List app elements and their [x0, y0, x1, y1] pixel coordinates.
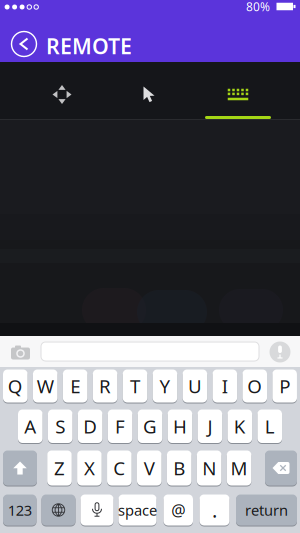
button[interactable]: space: [118, 494, 156, 526]
staticText: @: [171, 499, 185, 521]
button[interactable]: L: [257, 409, 282, 443]
button[interactable]: J: [198, 409, 222, 443]
button[interactable]: X: [77, 450, 102, 486]
button[interactable]: F: [108, 409, 132, 443]
staticText: return: [245, 500, 288, 520]
staticText: .: [212, 497, 217, 523]
button[interactable]: N: [197, 450, 221, 486]
button[interactable]: T: [123, 369, 147, 403]
staticText: I: [222, 374, 228, 398]
staticText: P: [279, 374, 290, 398]
staticText: F: [115, 414, 125, 439]
button[interactable]: H: [168, 409, 192, 443]
button[interactable]: R: [93, 369, 117, 403]
button[interactable]: S: [48, 409, 72, 443]
button[interactable]: [194, 71, 282, 117]
button[interactable]: [3, 450, 37, 486]
button[interactable]: V: [137, 450, 162, 486]
staticText: K: [234, 414, 246, 439]
button[interactable]: [106, 71, 194, 117]
button[interactable]: K: [227, 409, 252, 443]
button[interactable]: [265, 450, 297, 486]
staticText: R: [99, 374, 111, 398]
staticText: REMOTE: [46, 32, 132, 60]
button[interactable]: M: [227, 450, 251, 486]
staticText: L: [265, 414, 275, 439]
button[interactable]: W: [33, 369, 57, 403]
button[interactable]: [5, 339, 35, 365]
staticText: D: [83, 414, 97, 439]
staticText: H: [173, 414, 187, 439]
button[interactable]: D: [78, 409, 102, 443]
button[interactable]: Q: [3, 369, 28, 403]
button[interactable]: P: [272, 369, 297, 403]
button[interactable]: [268, 340, 291, 363]
staticText: A: [24, 414, 36, 439]
staticText: X: [84, 456, 95, 480]
staticText: 80%: [246, 0, 270, 14]
staticText: M: [231, 456, 248, 480]
staticText: O: [247, 374, 262, 398]
button[interactable]: 123: [3, 494, 36, 526]
staticText: space: [118, 500, 157, 520]
button[interactable]: G: [138, 409, 162, 443]
button[interactable]: Y: [153, 369, 177, 403]
staticText: Y: [159, 374, 170, 398]
button[interactable]: I: [212, 369, 237, 403]
staticText: J: [207, 414, 212, 439]
button[interactable]: [10, 30, 37, 57]
button[interactable]: A: [18, 409, 43, 443]
button[interactable]: [80, 494, 113, 526]
button[interactable]: O: [242, 369, 267, 403]
button[interactable]: @: [163, 494, 193, 526]
button[interactable]: return: [236, 494, 297, 526]
staticText: S: [55, 414, 65, 439]
button[interactable]: C: [107, 450, 132, 486]
staticText: U: [188, 374, 202, 398]
staticText: T: [130, 374, 140, 398]
staticText: E: [70, 374, 80, 398]
staticText: V: [144, 456, 155, 480]
button[interactable]: B: [167, 450, 191, 486]
staticText: G: [143, 414, 157, 439]
button[interactable]: [18, 71, 106, 117]
staticText: C: [113, 456, 125, 480]
staticText: Z: [54, 456, 65, 480]
button[interactable]: U: [183, 369, 207, 403]
button[interactable]: .: [199, 494, 229, 526]
button[interactable]: [41, 342, 259, 361]
staticText: B: [173, 456, 185, 480]
button[interactable]: Z: [47, 450, 72, 486]
staticText: 123: [8, 500, 32, 520]
staticText: N: [202, 456, 216, 480]
staticText: W: [37, 374, 54, 398]
staticText: Q: [8, 374, 23, 398]
button[interactable]: E: [63, 369, 87, 403]
button[interactable]: [41, 494, 75, 526]
